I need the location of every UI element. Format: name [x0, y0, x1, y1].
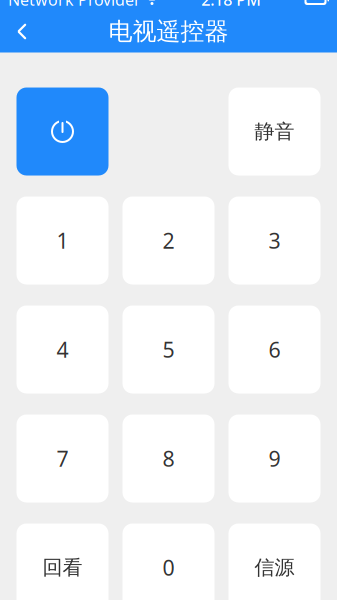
button[interactable]: 5	[122, 305, 214, 393]
staticText: 1	[56, 226, 68, 255]
staticText: 6	[268, 335, 280, 364]
button[interactable]: 0	[122, 523, 214, 600]
staticText: 4	[56, 335, 68, 364]
staticText: 7	[56, 444, 68, 473]
staticText: 电视遥控器	[108, 17, 228, 46]
button[interactable]: 3	[228, 196, 320, 284]
staticText: 0	[162, 553, 174, 582]
staticText: 静音	[254, 119, 294, 144]
staticText: 信源	[254, 555, 294, 580]
button[interactable]: 1	[16, 196, 108, 284]
staticText: 2:18 PM	[201, 0, 261, 10]
button[interactable]: Power	[16, 87, 108, 175]
button[interactable]: 7	[16, 414, 108, 502]
staticText: 2	[162, 226, 174, 255]
button[interactable]: 信源	[228, 523, 320, 600]
staticText: 9	[268, 444, 280, 473]
staticText: 回看	[42, 555, 82, 580]
staticText: 8	[162, 444, 174, 473]
button[interactable]: 2	[122, 196, 214, 284]
staticText: Network Provider	[8, 0, 141, 10]
button[interactable]: 4	[16, 305, 108, 393]
button[interactable]: 9	[228, 414, 320, 502]
button[interactable]: 6	[228, 305, 320, 393]
staticText: 3	[268, 226, 280, 255]
button[interactable]: Back	[0, 10, 44, 52]
button[interactable]: 回看	[16, 523, 108, 600]
button[interactable]: 8	[122, 414, 214, 502]
staticText: 5	[162, 335, 174, 364]
button[interactable]: 静音	[228, 87, 320, 175]
